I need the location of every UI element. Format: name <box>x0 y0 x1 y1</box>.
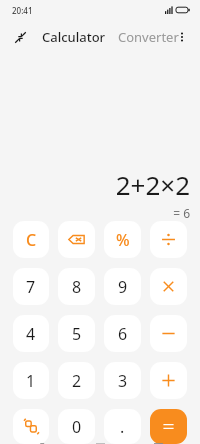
button[interactable]: 6 <box>104 315 141 352</box>
staticText: = 6 <box>173 205 190 221</box>
button[interactable]: C <box>13 221 49 258</box>
staticText: 6 <box>118 323 128 345</box>
staticText: 20:41 <box>12 5 33 16</box>
button[interactable]: % <box>104 221 141 258</box>
button[interactable]: More options <box>170 25 194 49</box>
staticText: 9 <box>118 276 128 298</box>
button[interactable]: 3 <box>104 362 141 399</box>
staticText: Converter <box>118 28 179 46</box>
button[interactable]: Collapse <box>8 25 32 49</box>
staticText: 0 <box>72 416 82 438</box>
button[interactable]: Divide <box>150 221 187 258</box>
button[interactable]: Calculator <box>40 24 108 50</box>
button[interactable]: . <box>104 409 141 444</box>
staticText: 2+2×2 <box>115 167 190 202</box>
staticText: 1 <box>26 370 36 392</box>
staticText: % <box>116 229 130 251</box>
button[interactable]: Equals <box>150 409 187 444</box>
button[interactable]: 7 <box>13 268 49 305</box>
button[interactable]: 1 <box>13 362 49 399</box>
button[interactable]: 4 <box>13 315 49 352</box>
button[interactable]: Scientific <box>13 409 49 444</box>
button[interactable]: 0 <box>58 409 95 444</box>
button[interactable]: Converter <box>116 24 181 50</box>
staticText: 4 <box>26 323 36 345</box>
staticText: 2 <box>72 370 82 392</box>
button[interactable]: Plus <box>150 362 187 399</box>
staticText: . <box>120 416 125 438</box>
staticText: Calculator <box>42 28 106 46</box>
button[interactable]: Backspace <box>58 221 95 258</box>
button[interactable]: 5 <box>58 315 95 352</box>
staticText: 3 <box>118 370 128 392</box>
button[interactable]: 2 <box>58 362 95 399</box>
staticText: C <box>26 229 37 251</box>
button[interactable]: 9 <box>104 268 141 305</box>
staticText: 7 <box>26 276 36 298</box>
button[interactable]: Multiply <box>150 268 187 305</box>
button[interactable]: Minus <box>150 315 187 352</box>
staticText: 8 <box>72 276 82 298</box>
staticText: 5 <box>72 323 82 345</box>
button[interactable]: 8 <box>58 268 95 305</box>
